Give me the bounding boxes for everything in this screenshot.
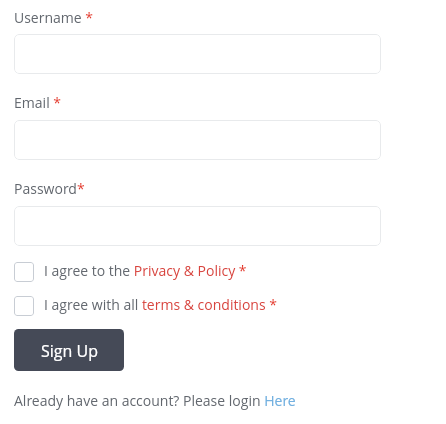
button[interactable]: Username input field xyxy=(14,34,381,74)
button[interactable]: I agree to the Privacy & Policy * xyxy=(14,262,247,282)
staticText: I agree with all terms & conditions * xyxy=(44,295,277,314)
button[interactable]: Already have an account? Please login He… xyxy=(14,391,296,410)
staticText: I agree to the Privacy & Policy * xyxy=(44,261,247,280)
button[interactable]: Password input field xyxy=(14,206,381,246)
button[interactable]: Email input field xyxy=(14,120,381,160)
staticText: Email * xyxy=(14,93,62,112)
button[interactable]: I agree with all terms & conditions * xyxy=(14,296,277,316)
staticText: Username * xyxy=(14,8,94,27)
staticText: Sign Up xyxy=(41,340,99,362)
staticText: Password* xyxy=(14,179,85,198)
button[interactable]: Sign Up xyxy=(14,329,124,371)
